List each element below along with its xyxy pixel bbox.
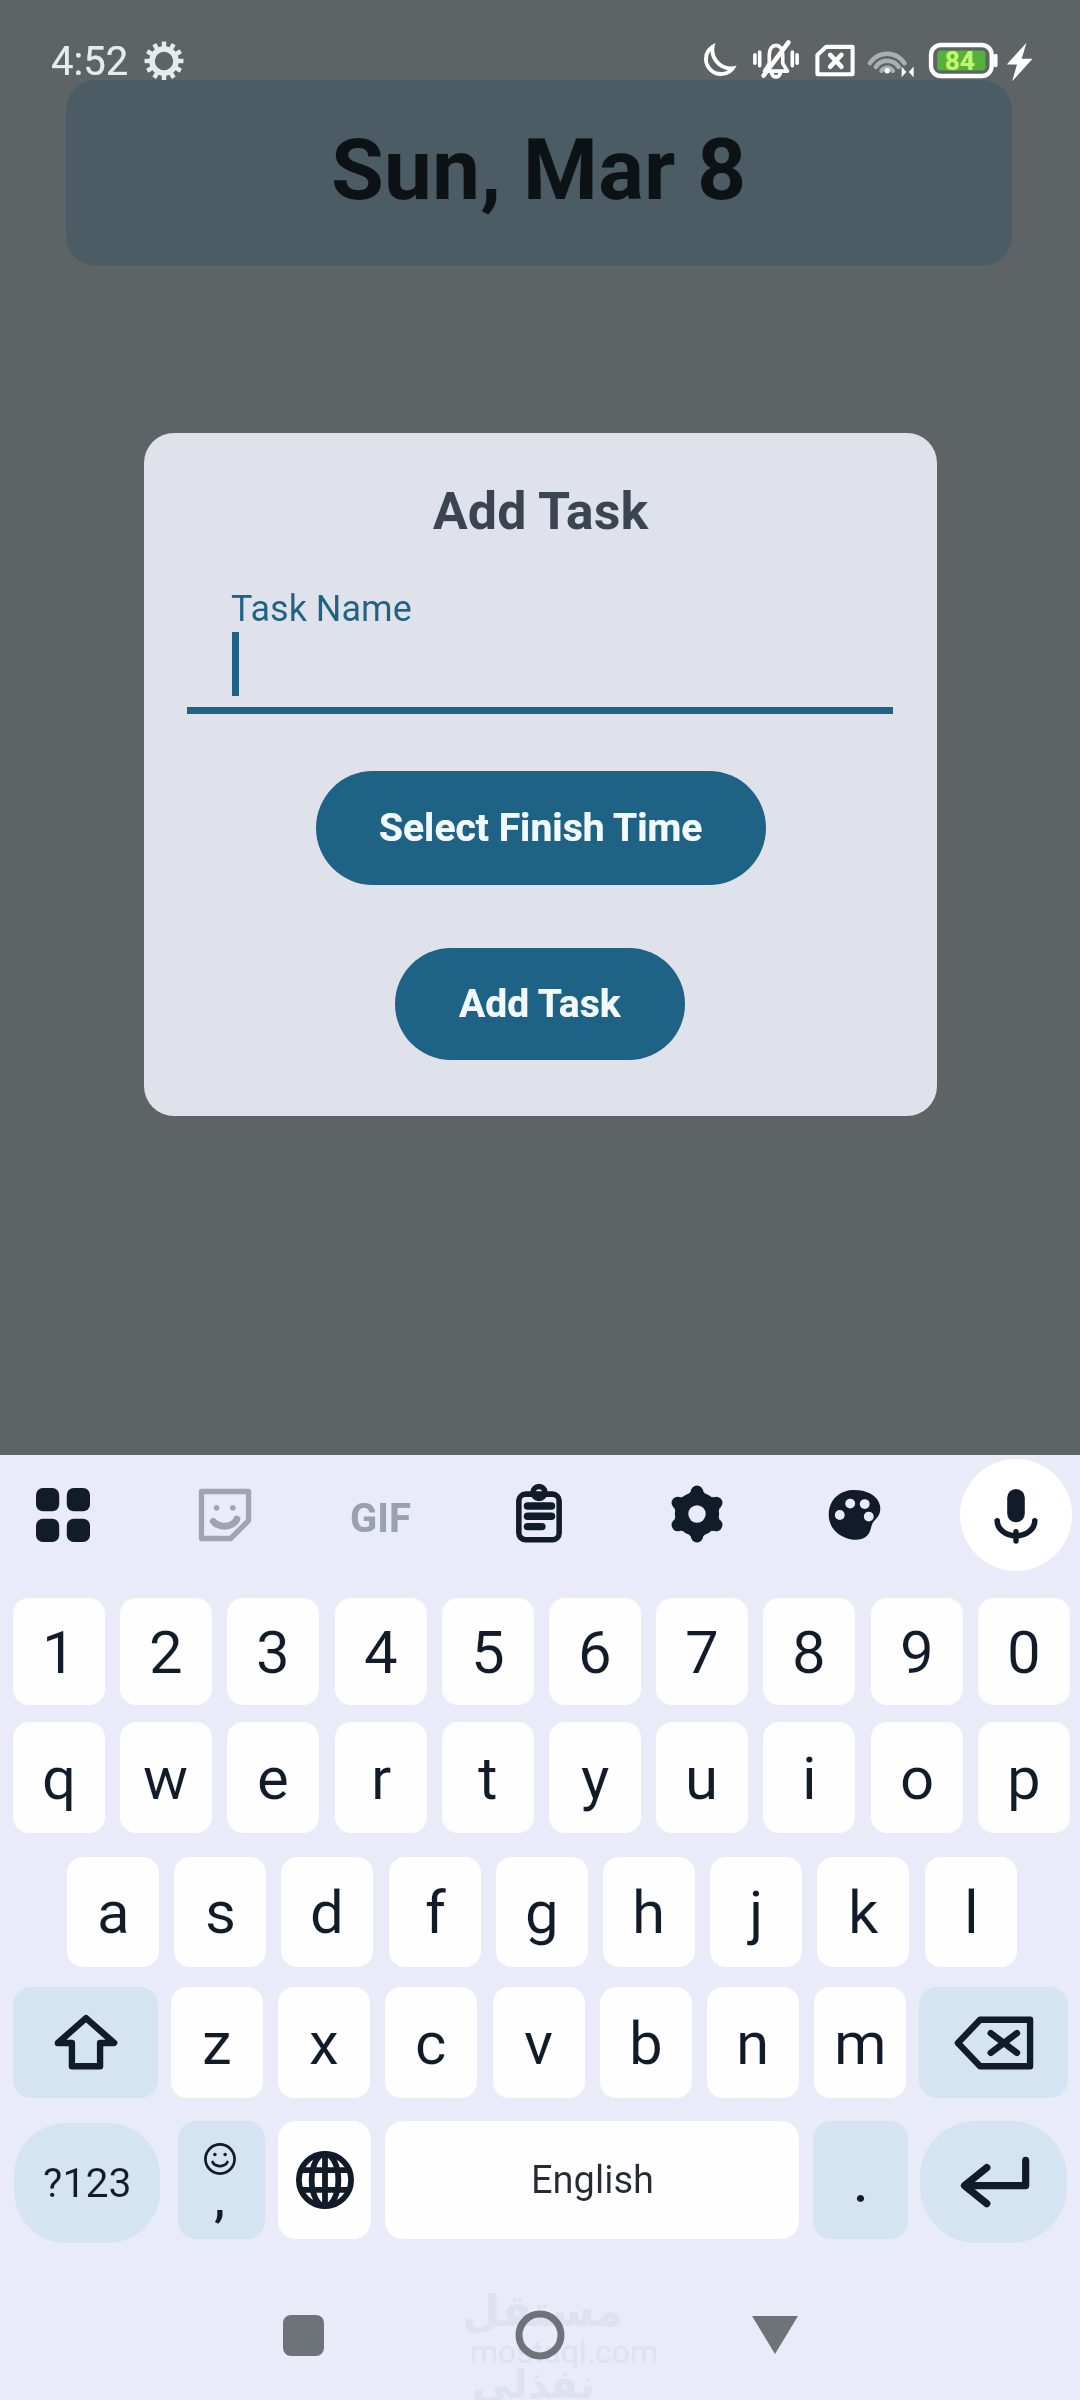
- staticText: y: [581, 1743, 610, 1813]
- button[interactable]: 9: [871, 1598, 963, 1705]
- staticText: 84: [945, 46, 975, 76]
- button[interactable]: w: [120, 1722, 212, 1833]
- staticText: p: [1007, 1743, 1041, 1813]
- button[interactable]: Backspace: [919, 1987, 1068, 2098]
- staticText: d: [310, 1877, 344, 1947]
- staticText: 4:52: [51, 38, 129, 85]
- button[interactable]: z: [171, 1987, 263, 2098]
- staticText: j: [749, 1877, 764, 1947]
- staticText: n: [736, 2008, 770, 2078]
- button[interactable]: a: [67, 1857, 159, 1967]
- staticText: 8: [792, 1617, 826, 1687]
- staticText: Add Task: [144, 481, 937, 542]
- button[interactable]: c: [385, 1987, 477, 2098]
- staticText: b: [629, 2008, 663, 2078]
- button[interactable]: 4: [335, 1598, 427, 1705]
- staticText: مستقل: [462, 2285, 623, 2336]
- button[interactable]: 3: [227, 1598, 319, 1705]
- staticText: x: [309, 2008, 339, 2078]
- staticText: t: [478, 1743, 498, 1813]
- button[interactable]: q: [13, 1722, 105, 1833]
- button[interactable]: 0: [978, 1598, 1070, 1705]
- button[interactable]: Add Task: [395, 948, 685, 1060]
- staticText: s: [205, 1877, 236, 1947]
- button[interactable]: d: [281, 1857, 373, 1967]
- button[interactable]: m: [814, 1987, 906, 2098]
- button[interactable]: v: [493, 1987, 585, 2098]
- button[interactable]: GIF: [350, 1495, 411, 1542]
- button[interactable]: Enter: [920, 2121, 1067, 2243]
- staticText: a: [97, 1877, 130, 1947]
- button[interactable]: 1: [13, 1598, 105, 1705]
- button[interactable]: h: [603, 1857, 695, 1967]
- staticText: ,: [214, 2173, 226, 2227]
- button[interactable]: i: [763, 1722, 855, 1833]
- button[interactable]: Select Finish Time: [316, 771, 766, 885]
- button[interactable]: b: [600, 1987, 692, 2098]
- button[interactable]: 7: [656, 1598, 748, 1705]
- staticText: w: [143, 1743, 189, 1813]
- button[interactable]: Apps: [36, 1488, 90, 1542]
- staticText: نفذلي: [472, 2361, 595, 2400]
- staticText: Select Finish Time: [379, 805, 703, 851]
- staticText: 9: [900, 1617, 934, 1687]
- staticText: l: [964, 1877, 979, 1947]
- staticText: i: [802, 1743, 817, 1813]
- button[interactable]: ?123: [14, 2123, 160, 2243]
- staticText: 0: [1007, 1617, 1041, 1687]
- staticText: g: [525, 1877, 559, 1947]
- button[interactable]: 5: [442, 1598, 534, 1705]
- button[interactable]: Recents: [243, 2275, 363, 2395]
- staticText: 1: [42, 1617, 76, 1687]
- button[interactable]: Settings: [669, 1486, 725, 1542]
- staticText: 4: [364, 1617, 398, 1687]
- button[interactable]: Sun, Mar 8: [66, 80, 1012, 266]
- staticText: e: [257, 1743, 289, 1813]
- staticText: z: [202, 2008, 232, 2078]
- button[interactable]: o: [871, 1722, 963, 1833]
- button[interactable]: s: [174, 1857, 266, 1967]
- staticText: .: [854, 2159, 868, 2213]
- button[interactable]: Back: [715, 2275, 835, 2395]
- button[interactable]: 8: [763, 1598, 855, 1705]
- button[interactable]: y: [549, 1722, 641, 1833]
- button[interactable]: Change language: [278, 2121, 371, 2239]
- button[interactable]: e: [227, 1722, 319, 1833]
- button[interactable]: l: [925, 1857, 1017, 1967]
- button[interactable]: p: [978, 1722, 1070, 1833]
- button[interactable]: 6: [549, 1598, 641, 1705]
- staticText: f: [425, 1877, 446, 1947]
- staticText: Sun, Mar 8: [331, 119, 747, 220]
- button[interactable]: Emoji: [178, 2121, 265, 2239]
- button[interactable]: Voice input: [960, 1459, 1072, 1571]
- button[interactable]: f: [389, 1857, 481, 1967]
- staticText: Add Task: [459, 981, 621, 1027]
- button[interactable]: k: [817, 1857, 909, 1967]
- button[interactable]: g: [496, 1857, 588, 1967]
- button[interactable]: .: [813, 2121, 908, 2239]
- staticText: 5: [471, 1617, 505, 1687]
- staticText: c: [415, 2008, 447, 2078]
- button[interactable]: t: [442, 1722, 534, 1833]
- button[interactable]: English: [385, 2121, 799, 2239]
- staticText: r: [371, 1743, 392, 1813]
- button[interactable]: Theme: [827, 1489, 885, 1541]
- staticText: h: [632, 1877, 666, 1947]
- button[interactable]: u: [656, 1722, 748, 1833]
- staticText: 2: [149, 1617, 183, 1687]
- staticText: o: [900, 1743, 935, 1813]
- button[interactable]: Stickers: [197, 1487, 253, 1543]
- button[interactable]: 2: [120, 1598, 212, 1705]
- button[interactable]: x: [278, 1987, 370, 2098]
- staticText: English: [531, 2158, 654, 2203]
- staticText: 7: [685, 1617, 719, 1687]
- button[interactable]: n: [707, 1987, 799, 2098]
- staticText: q: [42, 1743, 77, 1813]
- button[interactable]: Shift: [13, 1987, 158, 2098]
- button[interactable]: r: [335, 1722, 427, 1833]
- button[interactable]: Home: [480, 2275, 600, 2395]
- button[interactable]: Clipboard: [515, 1485, 563, 1542]
- button[interactable]: j: [710, 1857, 802, 1967]
- staticText: 6: [578, 1617, 612, 1687]
- staticText: mostaql.com: [470, 2333, 659, 2371]
